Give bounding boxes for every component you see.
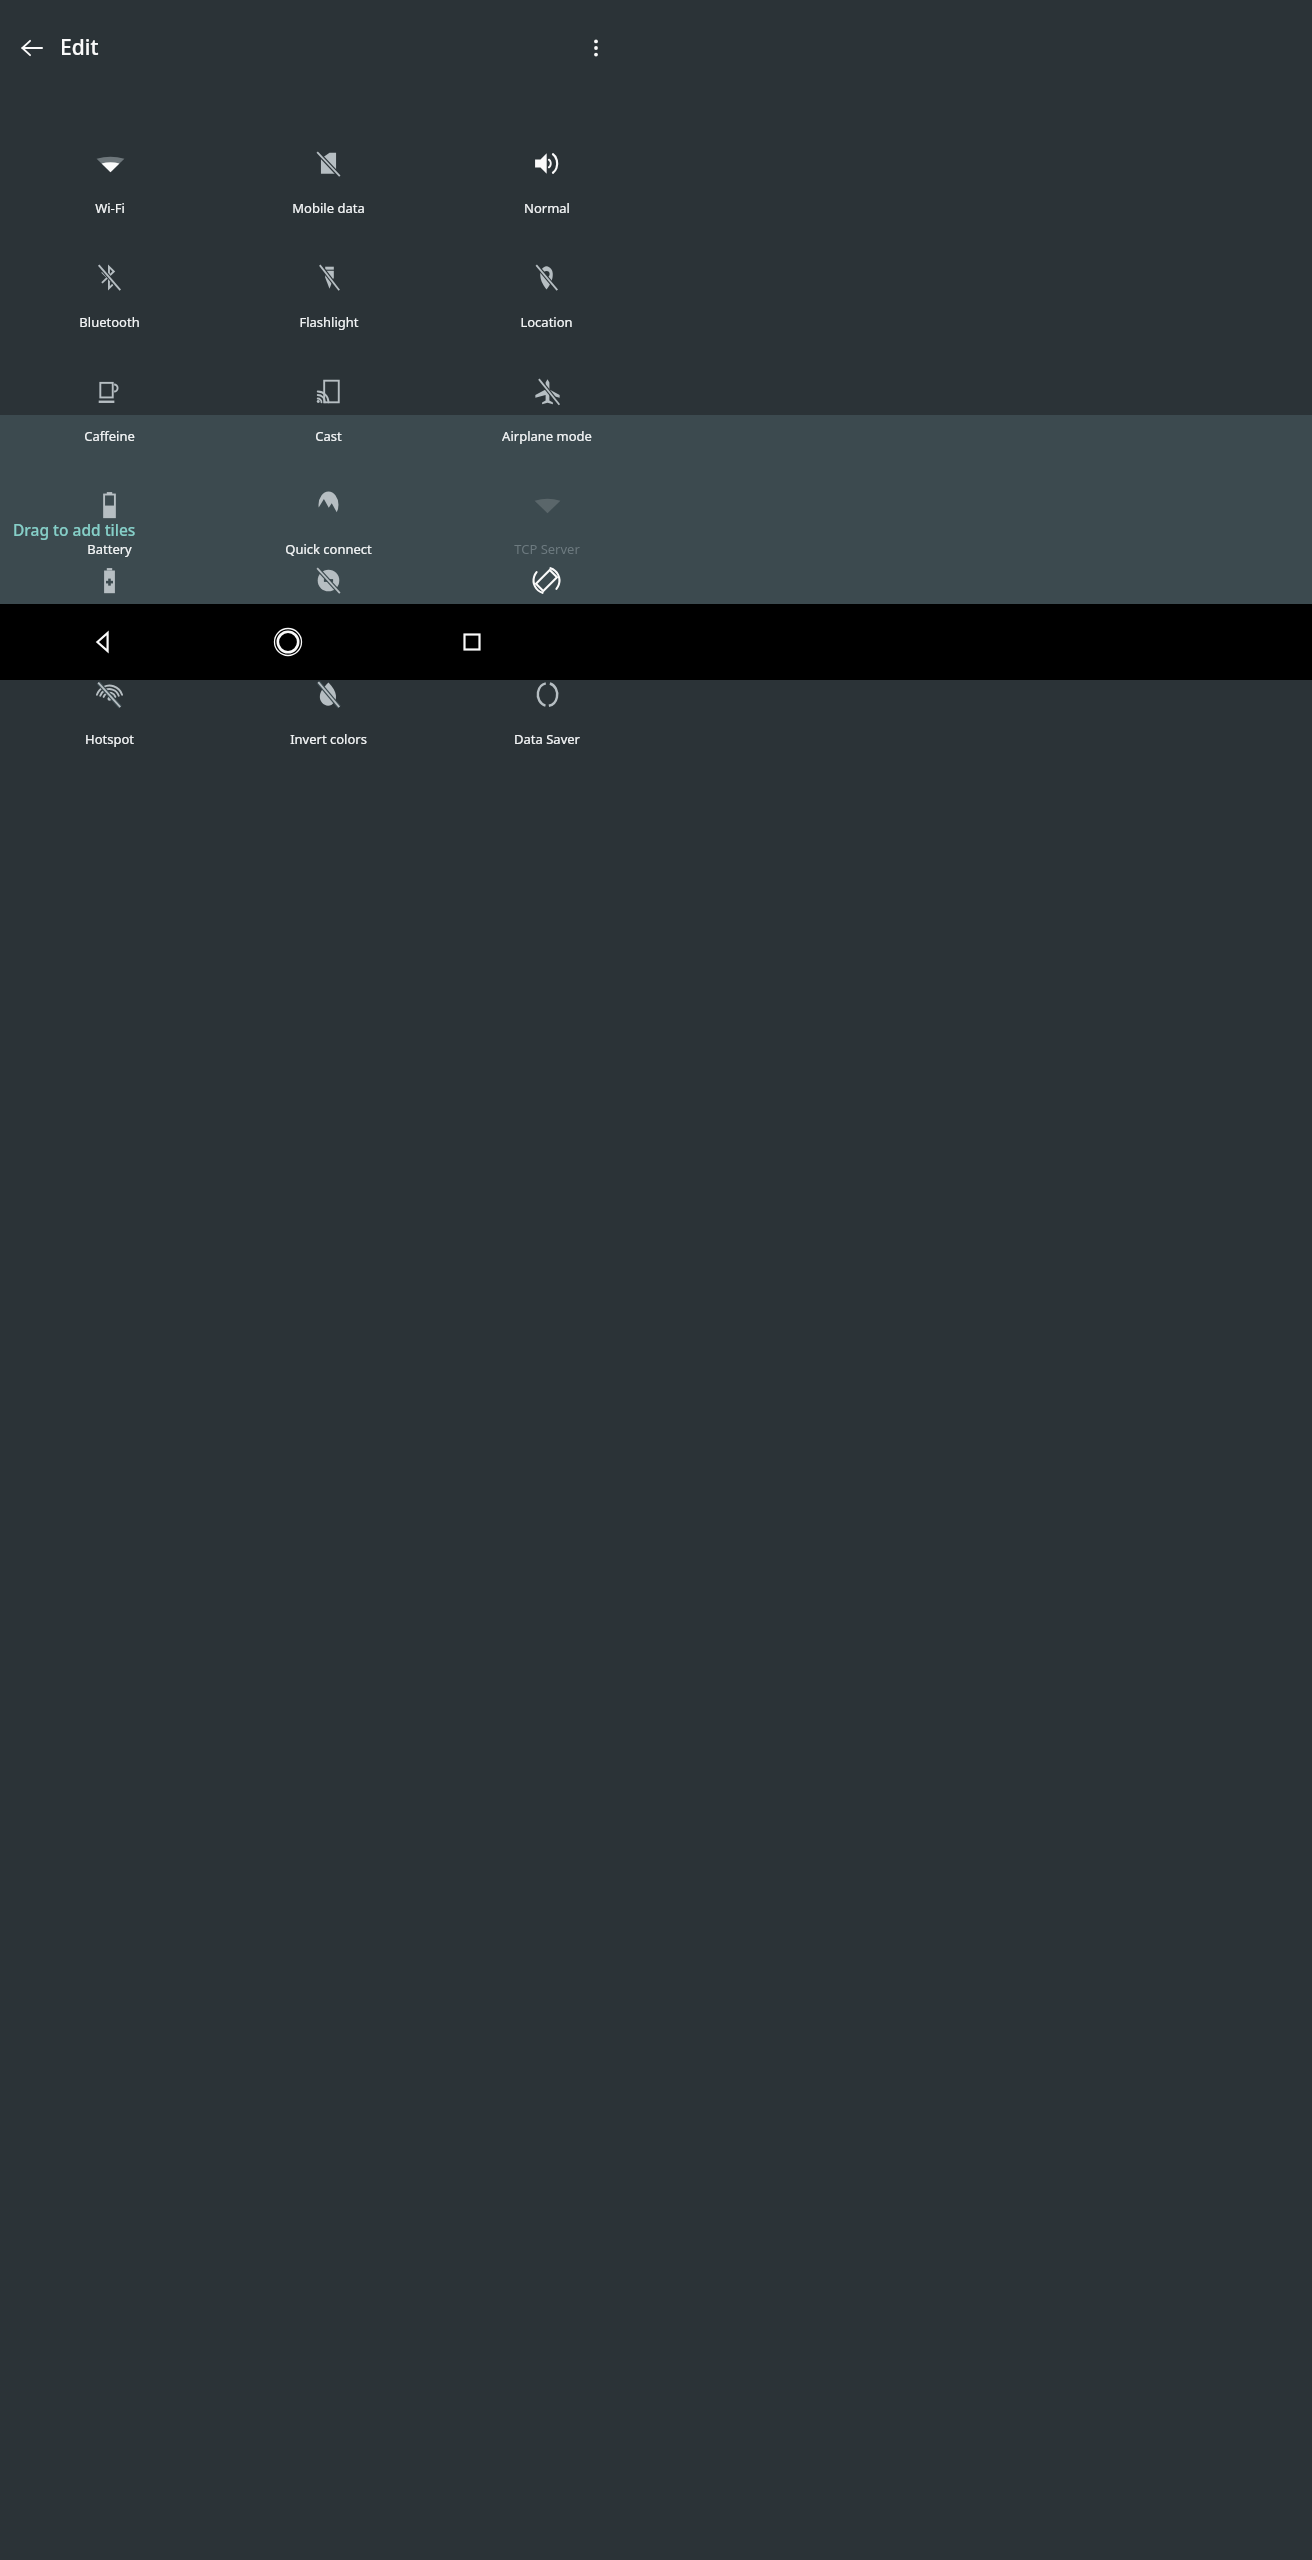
- staticText: Location: [520, 313, 573, 331]
- button[interactable]: Hotspot: [0, 672, 219, 786]
- staticText: Drag to add tiles: [13, 519, 136, 540]
- button[interactable]: Mobile data: [219, 141, 438, 255]
- staticText: Bluetooth: [79, 313, 140, 331]
- button[interactable]: Do not disturb: [219, 558, 438, 672]
- button[interactable]: Back: [8, 24, 56, 72]
- button[interactable]: Data Saver: [437, 672, 656, 786]
- button[interactable]: TCP Server: [437, 482, 656, 596]
- staticText: Caffeine: [84, 427, 135, 445]
- staticText: Data Saver: [514, 730, 580, 748]
- button[interactable]: Location: [437, 255, 656, 369]
- button[interactable]: Hide Notch: [0, 596, 219, 710]
- staticText: Normal: [524, 199, 570, 217]
- staticText: Invert colors: [290, 730, 367, 748]
- button[interactable]: Wi-Fi: [0, 141, 219, 255]
- staticText: Mobile data: [292, 199, 365, 217]
- button[interactable]: Back: [52, 604, 156, 680]
- button[interactable]: More options: [572, 24, 620, 72]
- button[interactable]: Caffeine: [0, 369, 219, 483]
- button[interactable]: Airplane mode: [437, 369, 656, 483]
- button[interactable]: Cast: [219, 369, 438, 483]
- button[interactable]: Auto-rotate: [437, 558, 656, 672]
- staticText: TCP Server: [514, 540, 580, 558]
- staticText: Wi-Fi: [95, 199, 125, 217]
- staticText: Quick connect: [285, 540, 372, 558]
- staticText: Battery: [87, 540, 132, 558]
- button[interactable]: Home: [236, 604, 340, 680]
- button[interactable]: Invert colors: [219, 672, 438, 786]
- button[interactable]: Bluetooth: [0, 255, 219, 369]
- staticText: Flashlight: [299, 313, 359, 331]
- staticText: Battery saver: [69, 616, 150, 634]
- button[interactable]: Battery saver: [0, 558, 219, 672]
- button[interactable]: Recent apps: [420, 604, 524, 680]
- staticText: Do not disturb: [284, 616, 373, 634]
- staticText: Hotspot: [85, 730, 134, 748]
- staticText: Airplane mode: [502, 427, 592, 445]
- button[interactable]: Normal: [437, 141, 656, 255]
- button[interactable]: Quick connect: [219, 482, 438, 596]
- staticText: Cast: [315, 427, 342, 445]
- button[interactable]: Flashlight: [219, 255, 438, 369]
- staticText: Edit: [60, 33, 99, 62]
- button[interactable]: Battery: [0, 482, 219, 596]
